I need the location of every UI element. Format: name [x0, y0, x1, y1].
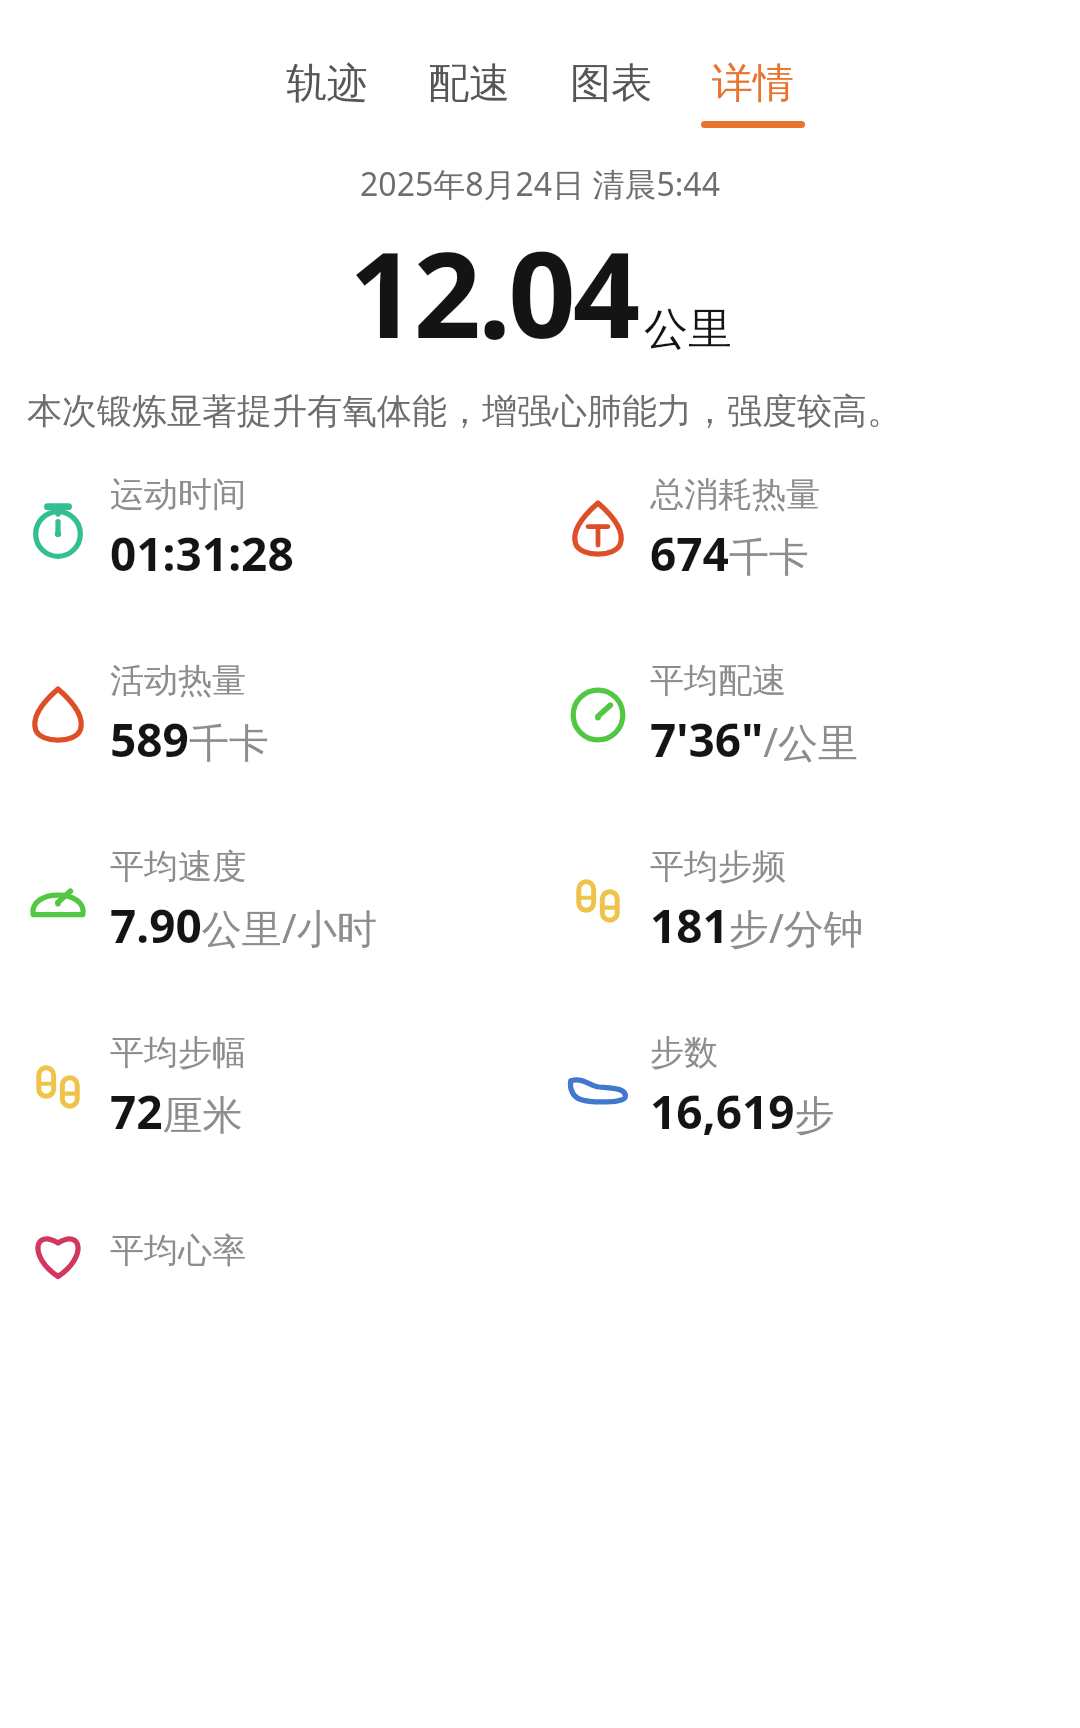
button[interactable]: 步数 — [540, 1009, 1080, 1143]
staticText: 运动时间 — [110, 473, 246, 516]
button[interactable]: 总消耗热量 — [540, 451, 1080, 585]
staticText: 平均配速 — [650, 659, 786, 702]
button[interactable]: 图表 — [555, 58, 667, 128]
other: 总消耗热量 — [562, 493, 634, 565]
other: 平均心率 — [22, 1217, 94, 1289]
staticText: 2025年8月24日 清晨5:44 — [0, 162, 1080, 206]
staticText: 平均速度 — [110, 845, 246, 888]
other: 活动热量 — [22, 679, 94, 751]
button[interactable]: 平均配速 — [540, 637, 1080, 771]
staticText: 总消耗热量 — [650, 473, 820, 516]
button[interactable]: 详情 — [697, 58, 809, 128]
staticText: 7.90公里/小时 — [110, 894, 377, 957]
staticText: 平均心率 — [110, 1229, 246, 1272]
button[interactable]: 活动热量 — [0, 637, 540, 771]
staticText: 轨迹 — [286, 58, 368, 110]
staticText: 步数 — [650, 1031, 718, 1074]
button[interactable]: 运动时间 — [0, 451, 540, 585]
other: 平均速度 — [22, 865, 94, 937]
staticText: 平均步频 — [650, 845, 786, 888]
other: 平均步频 — [562, 865, 634, 937]
button[interactable]: 平均步频 — [540, 823, 1080, 957]
button[interactable]: 轨迹 — [271, 58, 383, 128]
staticText: 16,619步 — [650, 1080, 835, 1143]
other: 步数 — [562, 1051, 634, 1123]
staticText: 活动热量 — [110, 659, 246, 702]
other: 平均步幅 — [22, 1051, 94, 1123]
staticText: 181步/分钟 — [650, 894, 864, 957]
staticText: 本次锻炼显著提升有氧体能，增强心肺能力，强度较高。 — [27, 389, 1053, 433]
staticText: 674千卡 — [650, 522, 809, 585]
staticText: 01:31:28 — [110, 522, 294, 585]
button[interactable]: 平均速度 — [0, 823, 540, 957]
staticText: 7'36"/公里 — [650, 708, 859, 771]
other: 运动时间 — [22, 493, 94, 565]
button[interactable]: 平均步幅 — [0, 1009, 540, 1143]
staticText: 12.04 — [349, 212, 638, 373]
button[interactable]: 平均心率 — [0, 1195, 540, 1289]
staticText: 公里 — [644, 302, 732, 357]
staticText: 589千卡 — [110, 708, 269, 771]
staticText: 平均步幅 — [110, 1031, 246, 1074]
button[interactable]: 配速 — [413, 58, 525, 128]
other: 平均配速 — [562, 679, 634, 751]
staticText: 详情 — [712, 58, 794, 110]
staticText: 配速 — [428, 58, 510, 110]
staticText: 图表 — [570, 58, 652, 110]
staticText: 72厘米 — [110, 1080, 243, 1143]
